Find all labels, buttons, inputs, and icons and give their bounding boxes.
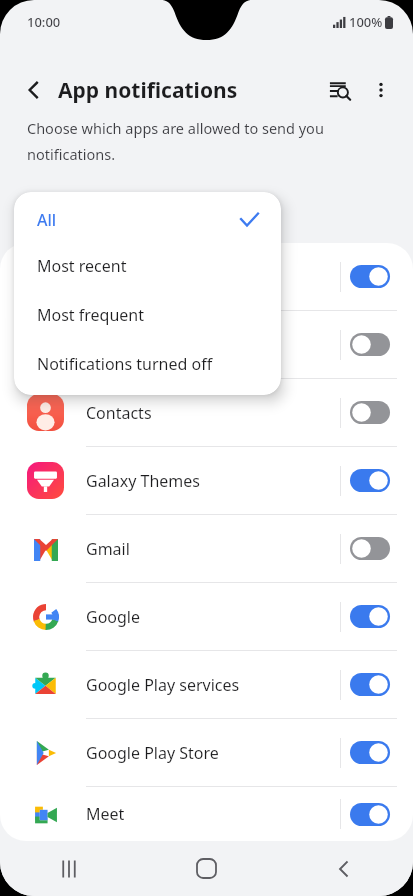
staticText: Google xyxy=(86,606,340,628)
staticText: Calendar xyxy=(86,266,340,288)
button[interactable]: Google notifications toggle xyxy=(350,605,390,628)
staticText: Most frequent xyxy=(37,304,281,326)
button[interactable]: All xyxy=(14,199,281,241)
staticText: App notifications xyxy=(58,76,238,105)
staticText: Meet xyxy=(86,803,340,825)
staticText: Gmail xyxy=(86,538,340,560)
button[interactable]: Galaxy Themes notifications toggle xyxy=(350,469,390,492)
button[interactable]: Google Play Store xyxy=(0,719,413,786)
button[interactable]: Gmail xyxy=(0,515,413,582)
staticText: 10:00 xyxy=(27,13,61,31)
button[interactable]: Google Play services xyxy=(0,651,413,718)
button[interactable]: Gmail notifications toggle xyxy=(350,537,390,560)
staticText: Notifications turned off xyxy=(37,353,281,375)
button[interactable]: Meet xyxy=(0,787,413,841)
button[interactable]: Camera xyxy=(0,311,413,378)
button[interactable]: Galaxy Themes xyxy=(0,447,413,514)
staticText: Galaxy Themes xyxy=(86,470,340,492)
staticText: Google Play services xyxy=(86,674,340,696)
button[interactable]: Calendar xyxy=(0,243,413,310)
button[interactable]: Back xyxy=(275,841,413,896)
staticText: All xyxy=(37,209,239,231)
button[interactable]: Home xyxy=(137,841,275,896)
button[interactable]: Most frequent xyxy=(14,290,281,339)
staticText: Camera xyxy=(86,334,340,356)
button[interactable]: More options xyxy=(361,70,401,110)
button[interactable]: Contacts xyxy=(0,379,413,446)
button[interactable]: Google xyxy=(0,583,413,650)
staticText: Contacts xyxy=(86,402,340,424)
button[interactable]: Meet notifications toggle xyxy=(350,803,390,826)
button[interactable]: Notifications turned off xyxy=(14,339,281,388)
button[interactable]: Google Play services notifications toggl… xyxy=(350,673,390,696)
button[interactable]: Google Play Store notifications toggle xyxy=(350,741,390,764)
button[interactable]: Back xyxy=(16,72,52,108)
button[interactable]: Recent apps xyxy=(0,841,137,896)
button[interactable]: Calendar notifications toggle xyxy=(350,265,390,288)
staticText: 100% xyxy=(349,13,383,31)
button[interactable]: Contacts notifications toggle xyxy=(350,401,390,424)
button[interactable]: Camera notifications toggle xyxy=(350,333,390,356)
staticText: Choose which apps are allowed to send yo… xyxy=(27,118,357,164)
staticText: Google Play Store xyxy=(86,742,340,764)
button[interactable]: Search xyxy=(319,69,361,111)
button[interactable]: Most recent xyxy=(14,241,281,290)
staticText: Most recent xyxy=(37,255,281,277)
